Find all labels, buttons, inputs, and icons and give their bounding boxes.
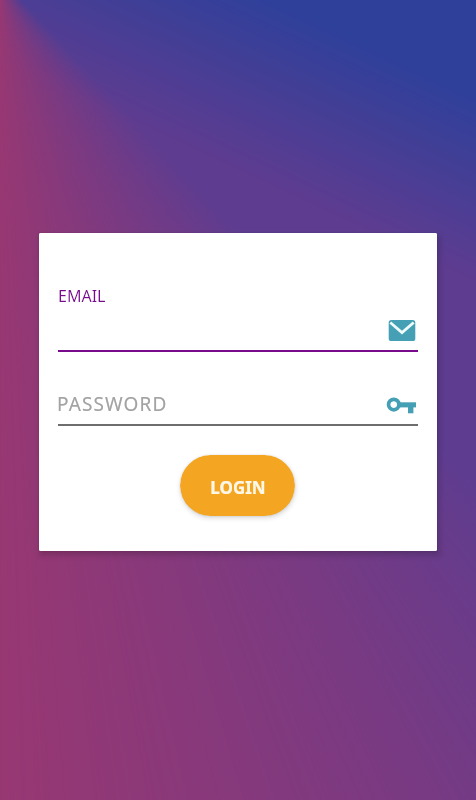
staticText: PASSWORD <box>57 391 168 417</box>
button[interactable]: Email <box>384 316 418 350</box>
button[interactable]: Password <box>382 392 416 426</box>
staticText: EMAIL <box>58 285 106 307</box>
button[interactable]: LOGIN <box>180 455 295 516</box>
staticText: LOGIN <box>210 476 266 499</box>
